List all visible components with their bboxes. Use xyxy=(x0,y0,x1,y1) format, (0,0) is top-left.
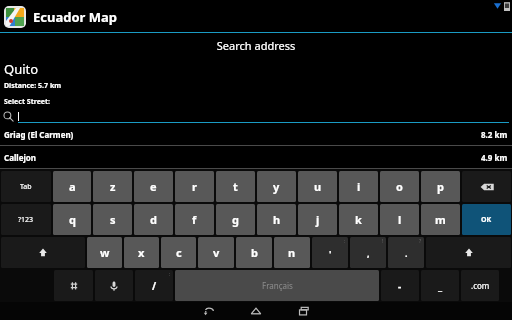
button[interactable]: u xyxy=(298,171,337,202)
staticText: k xyxy=(355,212,362,227)
staticText: .com xyxy=(471,280,490,291)
button[interactable]: . xyxy=(388,237,424,268)
staticText: n xyxy=(288,245,296,260)
staticText: Callejon xyxy=(4,152,37,163)
button[interactable]: Shift xyxy=(426,237,511,268)
staticText: / xyxy=(152,279,157,293)
button[interactable]: c xyxy=(161,237,196,268)
staticText: , xyxy=(367,247,370,259)
button[interactable]: Backspace xyxy=(462,171,511,202)
button[interactable]: / xyxy=(135,270,173,301)
staticText: 4.9 km xyxy=(481,152,508,163)
button[interactable]: Français xyxy=(175,270,379,301)
button[interactable]: Griag (El Carmen) xyxy=(0,123,512,145)
button[interactable]: _ xyxy=(421,270,459,301)
staticText: c xyxy=(176,245,182,260)
staticText: Français xyxy=(262,280,293,291)
button[interactable]: g xyxy=(216,204,255,235)
button[interactable]: b xyxy=(236,237,272,268)
staticText: t xyxy=(233,179,238,194)
button[interactable]: q xyxy=(53,204,91,235)
button[interactable]: x xyxy=(124,237,159,268)
staticText: : xyxy=(344,238,346,245)
button[interactable]: o xyxy=(380,171,419,202)
staticText: Ecuador Map xyxy=(33,8,118,26)
staticText: ? xyxy=(419,238,422,245)
button[interactable]: i xyxy=(339,171,378,202)
staticText: _ xyxy=(438,279,443,293)
button[interactable] xyxy=(0,109,512,123)
button[interactable]: Back xyxy=(195,302,221,320)
staticText: g xyxy=(232,212,239,227)
button[interactable]: j xyxy=(298,204,337,235)
staticText: p xyxy=(437,179,444,194)
staticText: j xyxy=(316,212,320,227)
button[interactable]: Voice input xyxy=(95,270,133,301)
staticText: Search address xyxy=(0,38,512,53)
staticText: x xyxy=(138,245,145,260)
button[interactable]: - xyxy=(381,270,419,301)
button[interactable]: r xyxy=(175,171,214,202)
button[interactable]: Tab xyxy=(1,171,51,202)
staticText: r xyxy=(192,179,197,194)
button[interactable]: , xyxy=(350,237,386,268)
staticText: a xyxy=(69,179,76,194)
button[interactable]: Shift xyxy=(1,237,85,268)
staticText: u xyxy=(314,179,322,194)
button[interactable]: t xyxy=(216,171,255,202)
staticText: o xyxy=(396,179,403,194)
staticText: Tab xyxy=(20,182,32,192)
button[interactable]: Callejon xyxy=(0,146,512,168)
staticText: b xyxy=(251,245,258,260)
button[interactable]: a xyxy=(53,171,91,202)
button[interactable]: p xyxy=(421,171,460,202)
staticText: Select Street: xyxy=(4,97,51,107)
button[interactable]: l xyxy=(380,204,419,235)
button[interactable]: z xyxy=(93,171,132,202)
staticText: h xyxy=(273,212,281,227)
button[interactable]: .com xyxy=(461,270,499,301)
button[interactable]: s xyxy=(93,204,132,235)
button[interactable]: ' xyxy=(312,237,348,268)
staticText: ' xyxy=(329,247,332,259)
staticText: q xyxy=(69,212,76,227)
staticText: s xyxy=(110,212,116,227)
button[interactable]: Recents xyxy=(291,302,317,320)
staticText: - xyxy=(398,279,402,293)
staticText: w xyxy=(100,245,110,260)
button[interactable]: d xyxy=(134,204,173,235)
staticText: Quito xyxy=(4,60,39,78)
button[interactable]: e xyxy=(134,171,173,202)
staticText: v xyxy=(213,245,220,260)
staticText: m xyxy=(435,212,446,227)
staticText: d xyxy=(150,212,157,227)
staticText: i xyxy=(357,179,361,194)
button[interactable]: m xyxy=(421,204,460,235)
staticText: z xyxy=(110,179,116,194)
staticText: : xyxy=(169,271,171,278)
button[interactable]: ?123 xyxy=(1,204,51,235)
button[interactable]: n xyxy=(274,237,310,268)
button[interactable]: h xyxy=(257,204,296,235)
button[interactable]: OK xyxy=(462,204,511,235)
button[interactable]: f xyxy=(175,204,214,235)
button[interactable]: v xyxy=(198,237,234,268)
staticText: OK xyxy=(481,215,492,225)
button[interactable]: k xyxy=(339,204,378,235)
button[interactable]: w xyxy=(87,237,122,268)
staticText: Distance: 5.7 km xyxy=(4,81,62,91)
staticText: l xyxy=(398,212,402,227)
button[interactable]: y xyxy=(257,171,296,202)
staticText: y xyxy=(273,179,280,194)
staticText: f xyxy=(192,212,197,227)
staticText: e xyxy=(150,179,157,194)
button[interactable]: Home xyxy=(243,302,269,320)
staticText: ?123 xyxy=(18,215,34,225)
staticText: ! xyxy=(382,238,384,245)
staticText: . xyxy=(405,247,408,259)
staticText: 8.2 km xyxy=(481,129,508,140)
staticText: Griag (El Carmen) xyxy=(4,129,74,140)
button[interactable]: Keyboard settings xyxy=(54,270,93,301)
